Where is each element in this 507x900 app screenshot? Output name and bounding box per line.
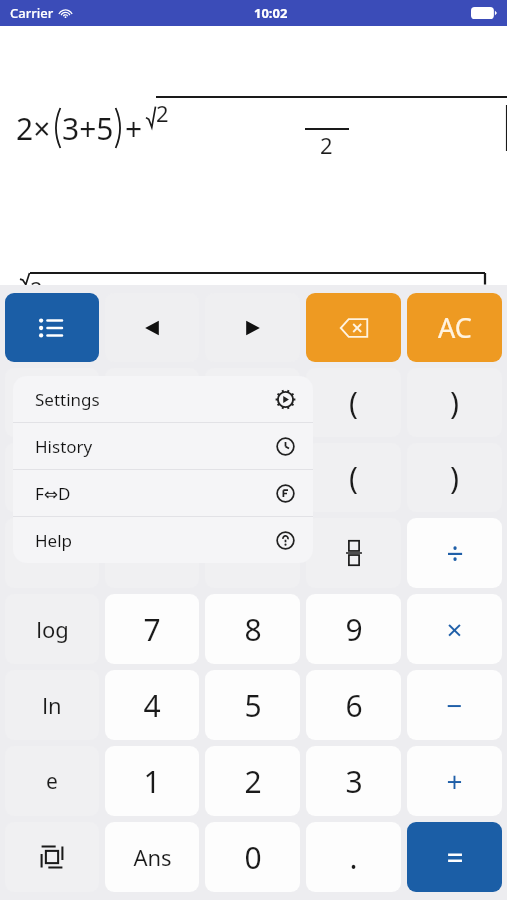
- staticText: .: [349, 837, 358, 878]
- button[interactable]: 2: [205, 746, 300, 816]
- button[interactable]: 5: [205, 670, 300, 740]
- staticText: 7: [143, 609, 161, 650]
- button[interactable]: Help: [13, 517, 313, 563]
- button[interactable]: ln: [5, 670, 99, 740]
- button[interactable]: (: [306, 368, 401, 437]
- staticText: 6: [345, 685, 363, 726]
- staticText: e: [46, 767, 58, 796]
- staticText: ): [450, 457, 459, 498]
- staticText: x²: [141, 461, 163, 494]
- button[interactable]: AC: [407, 293, 502, 362]
- staticText: (: [349, 457, 358, 498]
- staticText: AC: [438, 309, 472, 346]
- button[interactable]: ×: [407, 594, 502, 664]
- button[interactable]: log: [5, 594, 99, 664]
- staticText: 3+5: [62, 108, 114, 149]
- staticText: ln: [42, 690, 62, 720]
- button[interactable]: Backspace: [306, 293, 401, 362]
- staticText: +: [125, 108, 143, 149]
- staticText: ×: [446, 610, 463, 648]
- button[interactable]: .: [306, 822, 401, 892]
- staticText: 2: [244, 761, 262, 802]
- staticText: 2: [320, 130, 333, 160]
- button[interactable]: 4: [105, 670, 199, 740]
- button[interactable]: Rotate: [5, 822, 99, 892]
- button[interactable]: 8: [205, 594, 300, 664]
- staticText: 3: [345, 761, 363, 802]
- staticText: Help: [35, 529, 73, 552]
- staticText: ): [450, 382, 459, 423]
- staticText: 8: [244, 609, 262, 650]
- button[interactable]: 0: [205, 822, 300, 892]
- button[interactable]: tan: [205, 368, 300, 437]
- button[interactable]: Menu: [5, 293, 99, 362]
- button[interactable]: History: [13, 423, 313, 469]
- button[interactable]: (: [306, 443, 401, 512]
- button[interactable]: =: [407, 822, 502, 892]
- staticText: %: [42, 537, 62, 570]
- staticText: 0: [244, 837, 262, 878]
- button[interactable]: ): [407, 443, 502, 512]
- button[interactable]: −: [407, 670, 502, 740]
- staticText: ÷: [446, 533, 464, 574]
- staticText: 10:02: [254, 4, 288, 22]
- staticText: 2×: [16, 108, 51, 149]
- button[interactable]: %: [5, 518, 99, 588]
- button[interactable]: x³: [205, 443, 300, 512]
- button[interactable]: Cursor left: [105, 293, 199, 362]
- button[interactable]: 9: [306, 594, 401, 664]
- button[interactable]: Settings: [13, 376, 313, 422]
- staticText: Settings: [35, 388, 100, 411]
- staticText: History: [35, 435, 93, 458]
- staticText: 1: [143, 761, 161, 802]
- staticText: 9: [345, 609, 363, 650]
- button[interactable]: 1: [105, 746, 199, 816]
- button[interactable]: F⇔D: [13, 470, 313, 516]
- button[interactable]: 3: [306, 746, 401, 816]
- button[interactable]: e: [5, 746, 99, 816]
- staticText: Ans: [133, 842, 172, 872]
- staticText: x³: [242, 461, 264, 494]
- staticText: +: [446, 762, 463, 800]
- button[interactable]: √: [5, 443, 99, 512]
- button[interactable]: +: [407, 746, 502, 816]
- staticText: 5: [244, 685, 262, 726]
- button[interactable]: Ans: [105, 822, 199, 892]
- button[interactable]: sin: [5, 368, 99, 437]
- staticText: 4: [143, 685, 161, 726]
- button[interactable]: ^: [205, 518, 300, 588]
- staticText: 2: [30, 274, 43, 285]
- staticText: −: [446, 686, 463, 724]
- staticText: F⇔D: [35, 482, 71, 505]
- button[interactable]: 7: [105, 594, 199, 664]
- button[interactable]: ÷: [407, 518, 502, 588]
- staticText: Carrier: [10, 4, 54, 22]
- staticText: 2: [156, 98, 169, 128]
- button[interactable]: 6: [306, 670, 401, 740]
- staticText: √: [44, 463, 61, 493]
- staticText: (: [349, 382, 358, 423]
- button[interactable]: Fraction: [306, 518, 401, 588]
- staticText: log: [36, 614, 69, 644]
- button[interactable]: Cursor right: [205, 293, 300, 362]
- staticText: =: [446, 837, 464, 878]
- button[interactable]: ): [407, 368, 502, 437]
- staticText: sin: [36, 387, 68, 418]
